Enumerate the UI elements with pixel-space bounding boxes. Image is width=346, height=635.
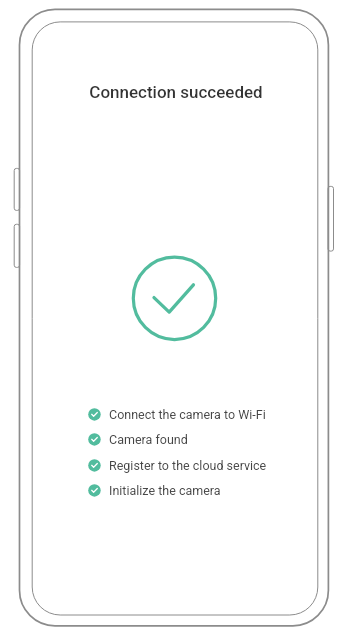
button[interactable]: Connect the camera to Wi-Fi (88, 405, 266, 423)
other: Success (130, 254, 220, 344)
staticText: Connection succeeded (89, 82, 263, 102)
staticText: Camera found (109, 432, 188, 447)
staticText: Connect the camera to Wi-Fi (109, 407, 266, 422)
button[interactable]: Register to the cloud service (88, 456, 267, 474)
staticText: Register to the cloud service (109, 458, 267, 473)
button[interactable]: Camera found (88, 430, 188, 448)
staticText: Initialize the camera (109, 483, 221, 498)
button[interactable]: Initialize the camera (88, 481, 221, 499)
